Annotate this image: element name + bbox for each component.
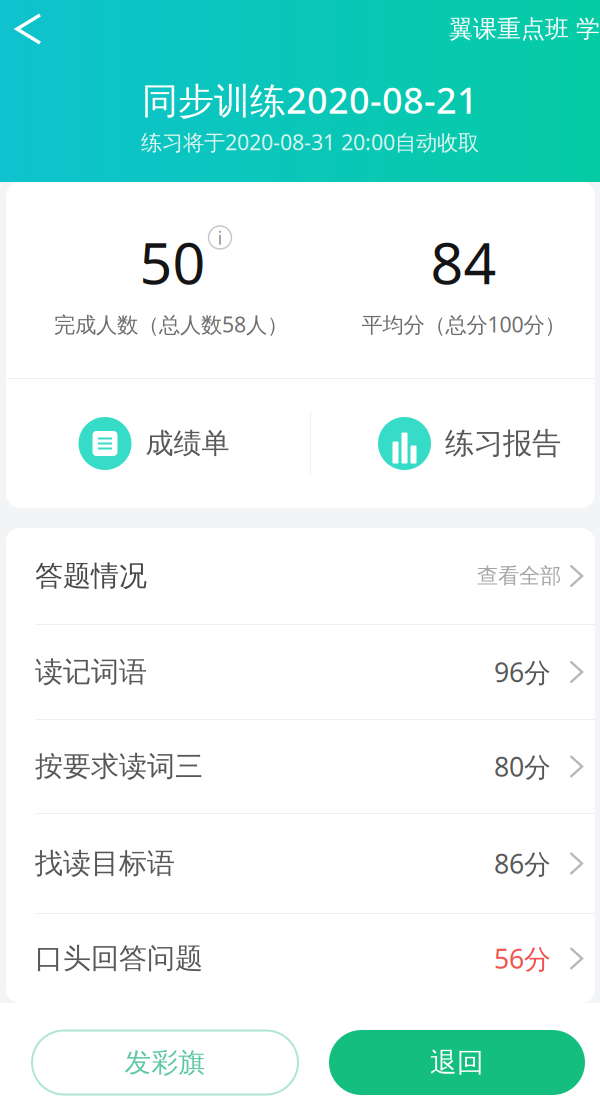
- button[interactable]: Back: [0, 0, 58, 58]
- staticText: 查看全部: [477, 563, 561, 589]
- button[interactable]: 按要求读词三: [6, 720, 595, 813]
- staticText: 80分: [494, 749, 551, 784]
- staticText: 读记词语: [35, 655, 147, 689]
- staticText: 56分: [494, 941, 551, 976]
- staticText: 同步训练2020-08-21: [142, 76, 478, 124]
- staticText: 翼课重点班 学: [449, 14, 600, 44]
- button[interactable]: 找读目标语: [6, 814, 595, 913]
- staticText: 96分: [494, 654, 551, 690]
- staticText: 发彩旗: [124, 1046, 205, 1079]
- staticText: 练习将于2020-08-31 20:00自动收取: [141, 128, 479, 156]
- staticText: 平均分（总分100分）: [361, 310, 565, 338]
- button[interactable]: 成绩单: [6, 379, 310, 508]
- button[interactable]: 答题情况: [6, 528, 595, 624]
- staticText: 答题情况: [35, 559, 147, 593]
- staticText: 成绩单: [145, 426, 229, 461]
- staticText: 口头回答问题: [35, 941, 203, 976]
- staticText: 完成人数（总人数58人）: [54, 310, 288, 338]
- staticText: i: [217, 225, 222, 250]
- staticText: 练习报告: [445, 425, 561, 461]
- staticText: 84: [430, 224, 496, 300]
- staticText: 找读目标语: [35, 846, 175, 881]
- button[interactable]: 口头回答问题: [6, 914, 595, 1003]
- button[interactable]: 退回: [329, 1030, 585, 1095]
- staticText: 退回: [430, 1046, 484, 1079]
- button[interactable]: 发彩旗: [32, 1030, 298, 1094]
- staticText: 50: [139, 224, 205, 300]
- staticText: 86分: [494, 846, 551, 881]
- button[interactable]: 读记词语: [6, 625, 595, 719]
- button[interactable]: 练习报告: [311, 379, 595, 508]
- staticText: 按要求读词三: [35, 749, 203, 784]
